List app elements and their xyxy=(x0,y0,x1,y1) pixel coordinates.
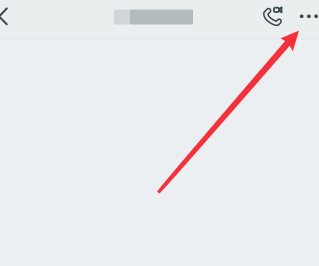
button[interactable]: Back xyxy=(0,0,30,38)
button[interactable]: More options xyxy=(289,0,319,38)
button[interactable]: Video call xyxy=(259,0,289,38)
